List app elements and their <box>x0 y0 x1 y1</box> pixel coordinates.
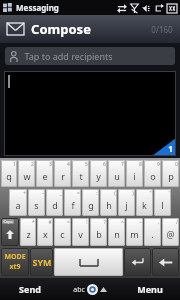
staticText: ? <box>103 219 106 226</box>
staticText: MODE <box>4 252 26 262</box>
button[interactable]: _ <box>46 189 63 216</box>
staticText: f <box>71 199 75 211</box>
staticText: # <box>48 219 52 226</box>
button[interactable]: Tap to add recipients <box>5 47 175 65</box>
button[interactable]: Menu <box>120 278 180 300</box>
staticText: h <box>106 199 112 211</box>
button[interactable]: * <box>20 218 36 246</box>
button[interactable]: ~ <box>126 218 143 246</box>
button[interactable]: 9 <box>144 160 161 187</box>
button[interactable]: MODE <box>1 248 29 276</box>
button[interactable]: # <box>37 218 53 246</box>
button[interactable]: 7 <box>108 160 125 187</box>
staticText: ~ <box>139 219 142 226</box>
staticText: l <box>161 199 164 211</box>
staticText: 8 <box>139 161 142 168</box>
staticText: 6 <box>103 161 106 168</box>
staticText: ^ <box>121 219 124 226</box>
staticText: i <box>133 170 136 182</box>
button[interactable]: , <box>144 218 161 246</box>
staticText: t <box>79 170 83 182</box>
staticText: / <box>176 219 178 226</box>
staticText: e <box>42 170 48 182</box>
button[interactable]: 4 <box>54 160 71 187</box>
button[interactable]: 1 <box>1 160 17 187</box>
button[interactable]: = <box>54 218 71 246</box>
staticText: x <box>43 228 48 240</box>
button[interactable]: Space <box>54 248 123 276</box>
staticText: 3 <box>49 161 52 168</box>
staticText: 7 <box>121 161 124 168</box>
staticText: " <box>149 190 152 197</box>
staticText: Messaging <box>16 2 59 13</box>
staticText: u <box>114 170 120 182</box>
staticText: p <box>168 170 174 182</box>
button[interactable]: ( <box>100 189 117 216</box>
staticText: c <box>60 228 65 240</box>
staticText: @ <box>166 228 175 240</box>
button[interactable]: 0 <box>162 160 179 187</box>
staticText: 1 <box>168 143 173 154</box>
staticText: SYM <box>32 256 52 268</box>
button[interactable]: : <box>82 189 99 216</box>
staticText: Send <box>19 283 41 295</box>
staticText: = <box>77 190 80 197</box>
staticText: ' <box>168 190 170 197</box>
staticText: . <box>151 228 154 240</box>
staticText: z <box>26 228 31 240</box>
button[interactable]: ) <box>118 189 135 216</box>
staticText: k <box>142 199 147 211</box>
button[interactable]: 5 <box>72 160 89 187</box>
button[interactable]: = <box>64 189 81 216</box>
staticText: 9 <box>157 161 160 168</box>
staticText: d <box>52 199 58 211</box>
button[interactable]: 2 <box>18 160 35 187</box>
staticText: - <box>42 190 44 197</box>
staticText: v <box>78 228 83 240</box>
staticText: q <box>6 170 12 182</box>
staticText: b <box>96 228 102 240</box>
staticText: Menu <box>137 283 163 295</box>
staticText: Tap to add recipients <box>24 50 113 62</box>
staticText: _ <box>59 190 62 197</box>
button[interactable]: / <box>162 218 179 246</box>
button[interactable]: - <box>28 189 45 216</box>
staticText: = <box>67 219 70 226</box>
button[interactable]: ! <box>72 218 89 246</box>
button[interactable]: ' <box>154 189 171 216</box>
button[interactable]: Send <box>0 278 60 300</box>
staticText: g <box>88 199 94 211</box>
button[interactable]: ^ <box>108 218 125 246</box>
button[interactable]: 6 <box>90 160 107 187</box>
staticText: n <box>114 228 120 240</box>
button[interactable]: Backspace <box>152 248 179 276</box>
staticText: ! <box>86 219 88 226</box>
staticText: o <box>150 170 156 182</box>
button[interactable]: 1 <box>4 71 176 156</box>
button[interactable]: SYM <box>30 248 53 276</box>
staticText: a <box>15 199 21 211</box>
button[interactable]: Compose <box>0 15 180 43</box>
button[interactable]: ? <box>90 218 107 246</box>
staticText: : <box>96 190 98 197</box>
staticText: 1 <box>13 161 16 168</box>
staticText: y <box>96 170 101 182</box>
staticText: 4 <box>67 161 70 168</box>
button[interactable]: 8 <box>126 160 143 187</box>
staticText: 5 <box>85 161 88 168</box>
staticText: j <box>125 199 128 211</box>
staticText: m <box>130 228 139 240</box>
staticText: ) <box>132 190 134 197</box>
staticText: 2 <box>31 161 34 168</box>
button[interactable]: + <box>9 189 27 216</box>
staticText: , <box>158 219 160 226</box>
button[interactable]: 3 <box>36 160 53 187</box>
button[interactable]: " <box>136 189 153 216</box>
button[interactable]: Enter <box>124 248 151 276</box>
staticText: r <box>61 170 65 182</box>
button[interactable]: Input method <box>60 278 120 300</box>
staticText: * <box>32 219 35 226</box>
staticText: abc <box>73 285 85 295</box>
button[interactable]: Caps shift <box>1 218 19 246</box>
staticText: xt9 <box>9 262 21 272</box>
